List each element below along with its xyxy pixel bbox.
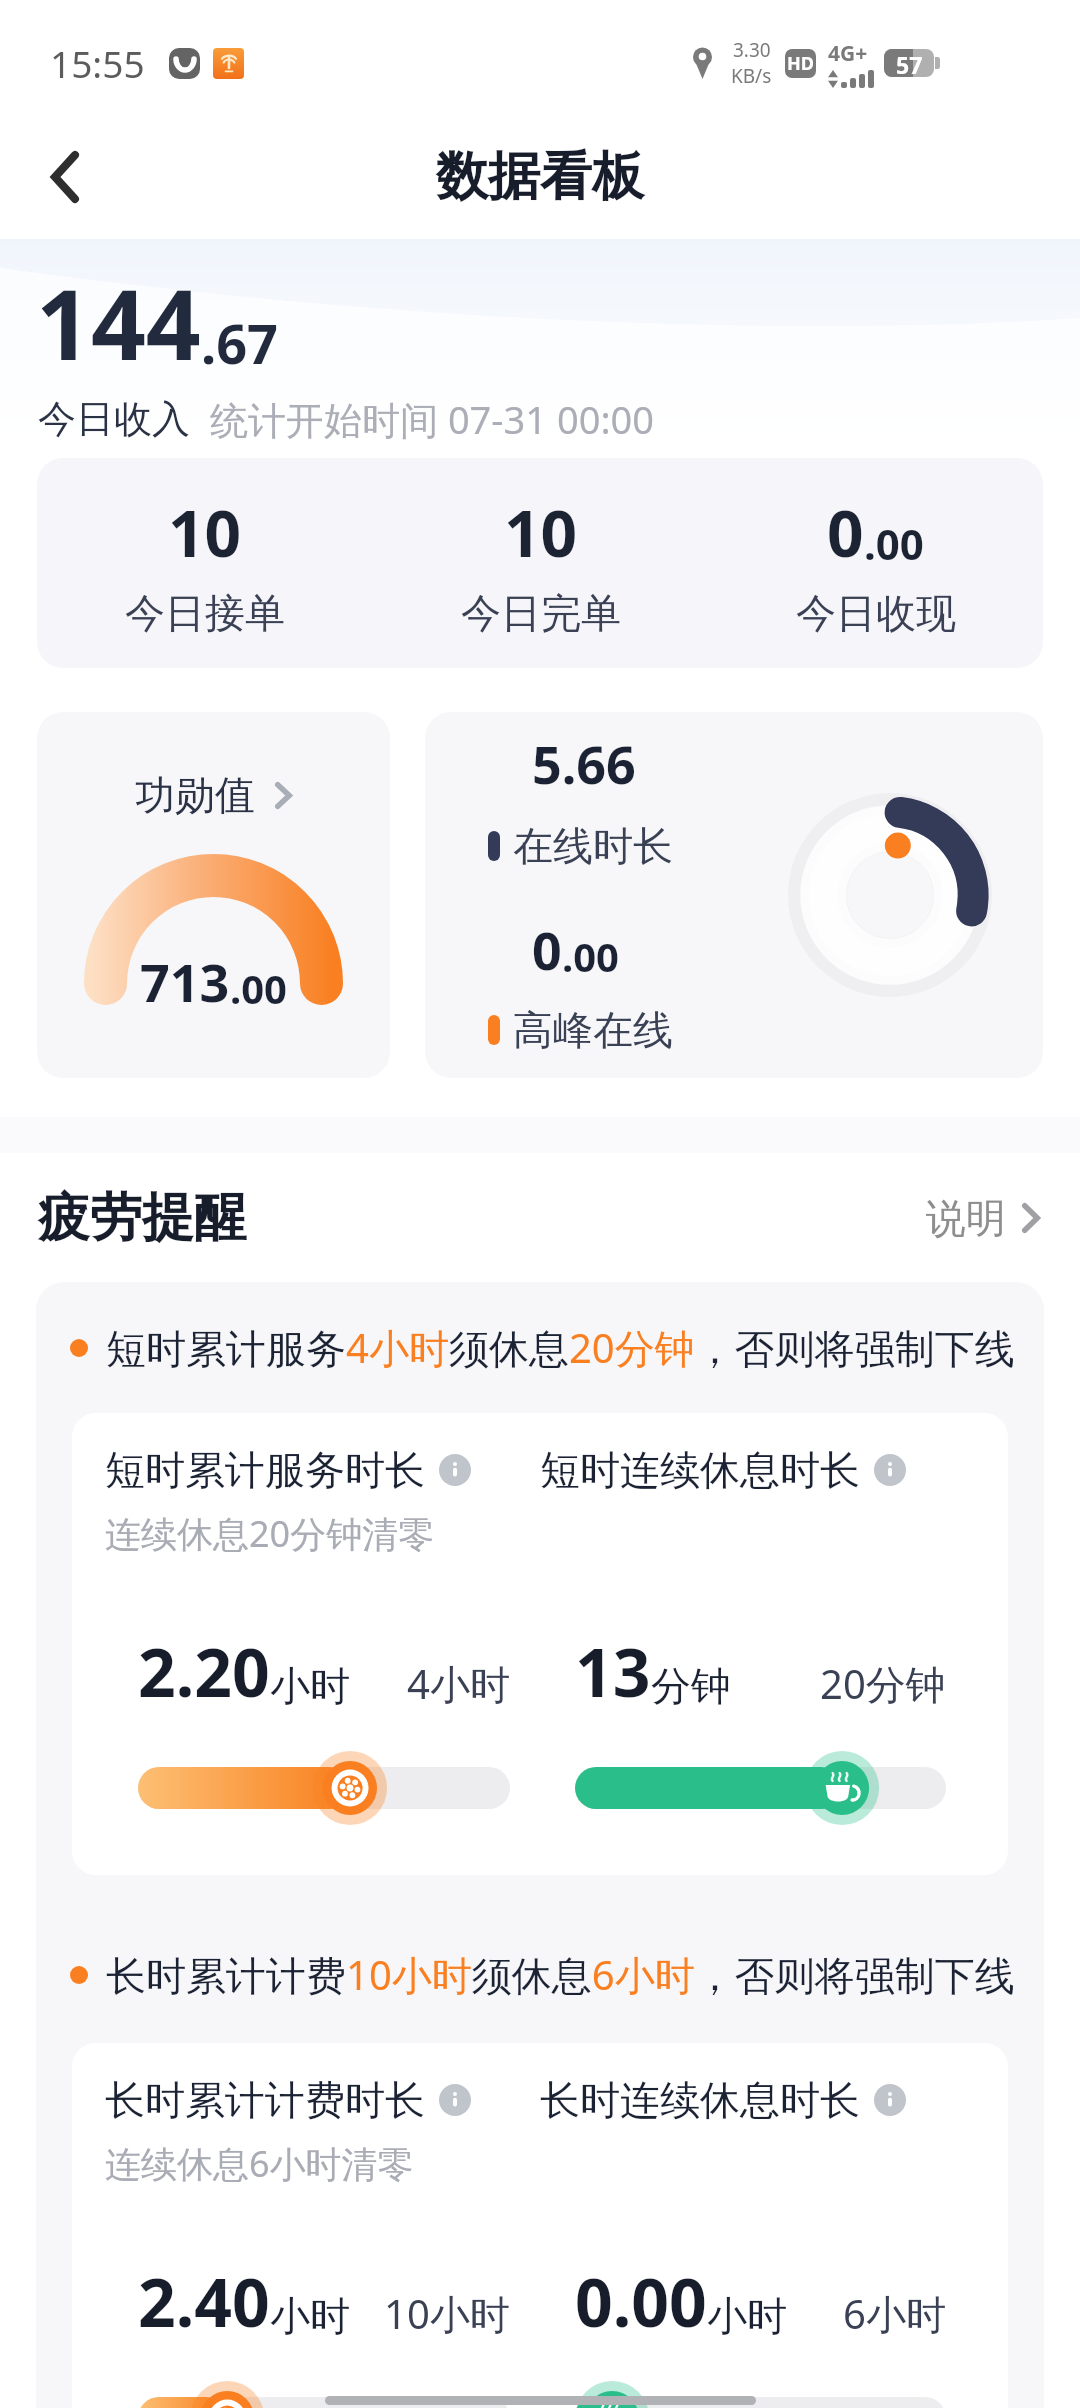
staticText: 连续休息6小时清零	[105, 2139, 414, 2188]
staticText: 高峰在线	[513, 1005, 673, 1055]
staticText: 10	[168, 489, 242, 576]
staticText: 15:55	[50, 38, 145, 88]
button[interactable]: 5.66	[425, 712, 1043, 1078]
staticText: 长时累计计费时长	[105, 2075, 425, 2125]
staticText: 0.00	[575, 2256, 707, 2346]
staticText: 疲劳提醒	[38, 1185, 246, 1251]
staticText: 小时	[270, 2291, 350, 2341]
staticText: 6小时	[843, 2286, 946, 2341]
staticText: .67	[201, 306, 278, 380]
staticText: 短时累计服务4小时须休息20分钟，否则将强制下线	[106, 1320, 1015, 1375]
staticText: 13	[575, 1626, 651, 1716]
button[interactable]: Back	[22, 134, 108, 220]
staticText: 今日接单	[125, 588, 285, 638]
staticText: 5.66	[532, 728, 636, 799]
staticText: 713	[140, 946, 230, 1017]
staticText: HD	[787, 51, 814, 76]
staticText: 小时	[270, 1661, 350, 1711]
button[interactable]: 功勋值	[37, 712, 390, 1078]
staticText: 10	[504, 489, 578, 576]
staticText: 说明	[926, 1193, 1006, 1243]
button[interactable]: 说明	[874, 1454, 906, 1486]
staticText: 144	[36, 257, 201, 388]
staticText: 4小时	[407, 1656, 510, 1711]
staticText: 20分钟	[820, 1656, 946, 1711]
button[interactable]: 说明	[439, 2084, 471, 2116]
staticText: 2.20	[138, 1626, 270, 1716]
staticText: 长时连续休息时长	[540, 2075, 860, 2125]
button[interactable]: 说明	[439, 1454, 471, 1486]
staticText: 连续休息20分钟清零	[105, 1509, 435, 1558]
staticText: 短时连续休息时长	[540, 1445, 860, 1495]
staticText: 数据看板	[436, 144, 644, 210]
staticText: 57	[896, 49, 923, 77]
staticText: 今日收入	[38, 395, 190, 443]
staticText: 2.40	[138, 2256, 270, 2346]
staticText: 小时	[707, 2291, 787, 2341]
staticText: 3.30	[733, 37, 771, 63]
staticText: 10小时	[384, 2286, 510, 2341]
staticText: KB/s	[731, 63, 772, 89]
staticText: 分钟	[651, 1661, 731, 1711]
button[interactable]: 10	[37, 458, 373, 668]
button[interactable]: 说明	[874, 2084, 906, 2116]
button[interactable]: 10	[373, 458, 708, 668]
staticText: 今日完单	[461, 588, 621, 638]
staticText: 功勋值	[135, 770, 255, 820]
staticText: .00	[230, 961, 287, 1015]
staticText: 4G+	[828, 39, 868, 68]
staticText: 短时累计服务时长	[105, 1445, 425, 1495]
staticText: 今日收现	[796, 588, 956, 638]
button[interactable]: 0	[708, 458, 1043, 668]
staticText: .00	[562, 929, 619, 983]
staticText: 0	[827, 489, 864, 576]
staticText: .00	[864, 515, 924, 572]
staticText: 长时累计计费10小时须休息6小时，否则将强制下线	[106, 1947, 1015, 2002]
button[interactable]: 说明	[920, 1179, 1046, 1257]
staticText: 在线时长	[513, 821, 673, 871]
staticText: 统计开始时间 07-31 00:00	[210, 393, 655, 445]
staticText: 0	[532, 914, 562, 985]
